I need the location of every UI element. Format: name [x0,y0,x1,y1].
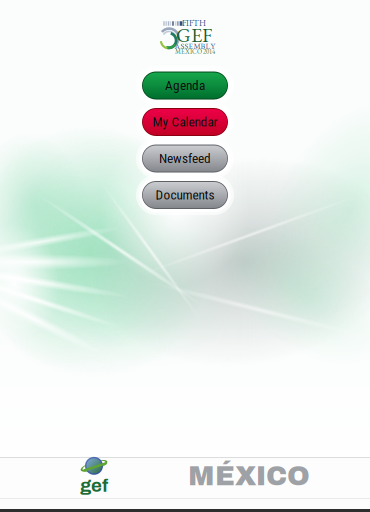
staticText: gef [80,475,108,496]
button[interactable]: My Calendar [135,101,235,143]
staticText: FIFTH [182,17,206,29]
staticText: Documents [155,187,214,203]
button[interactable]: Documents [135,174,235,216]
staticText: ASSEMBLY [174,41,215,51]
button[interactable]: Agenda [135,64,235,106]
staticText: Newsfeed [159,151,211,166]
staticText: Agenda [165,78,205,93]
staticText: MÉXICO [188,461,310,491]
staticText: MÉXICO 2014 [175,47,215,56]
staticText: My Calendar [152,114,217,130]
button[interactable]: Newsfeed [135,137,235,179]
staticText: GEF [176,22,212,48]
